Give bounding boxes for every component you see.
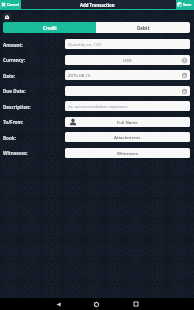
button[interactable]: USD xyxy=(65,55,190,65)
staticText: Book: xyxy=(3,135,16,141)
button[interactable]: Full Name xyxy=(65,117,190,127)
button[interactable]: Attachments xyxy=(65,132,190,142)
button[interactable]: Save xyxy=(176,0,194,9)
button[interactable]: Quantity ex. 120 xyxy=(65,39,190,49)
button[interactable]: Back xyxy=(52,298,64,310)
staticText: Currency: xyxy=(3,57,25,63)
staticText: Attachments xyxy=(114,134,141,140)
button[interactable]: Account xyxy=(3,13,11,21)
staticText: Save xyxy=(183,2,192,7)
staticText: Quantity ex. 120 xyxy=(68,41,101,47)
staticText: Witnesses xyxy=(117,150,138,156)
staticText: Full Name xyxy=(117,119,138,125)
staticText: Debit xyxy=(137,25,150,31)
button[interactable]: Recent apps xyxy=(130,298,142,310)
staticText: Cancel xyxy=(7,2,20,7)
button[interactable]: Credit xyxy=(3,22,96,33)
button[interactable]: 2015-08-15 xyxy=(65,70,190,80)
button[interactable]: Home xyxy=(90,298,102,310)
staticText: Due Date: xyxy=(3,88,26,94)
button[interactable]: Cancel xyxy=(0,0,21,9)
button[interactable] xyxy=(65,86,190,96)
staticText: Add Transaction xyxy=(80,2,115,8)
staticText: Description: xyxy=(3,104,31,110)
staticText: Credit xyxy=(43,25,57,31)
button[interactable]: Witnesses xyxy=(65,148,190,158)
staticText: Amount: xyxy=(3,42,23,48)
button[interactable]: Debit xyxy=(96,22,190,33)
staticText: Witnesses: xyxy=(3,150,28,156)
staticText: ex. accommodation expenses xyxy=(68,103,128,109)
staticText: USD xyxy=(123,57,132,63)
staticText: To/From: xyxy=(3,119,24,125)
staticText: 2015-08-15 xyxy=(68,72,91,78)
button[interactable]: ex. accommodation expenses xyxy=(65,101,190,111)
staticText: Date: xyxy=(3,73,16,79)
